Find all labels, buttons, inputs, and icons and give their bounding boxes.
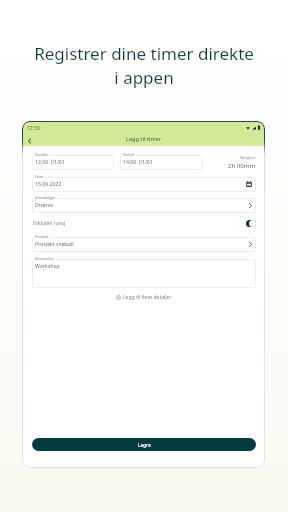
staticText: 14:00 01/01 bbox=[123, 158, 153, 165]
other: Open bbox=[249, 242, 252, 247]
button[interactable]: Prosjekt bbox=[32, 234, 256, 252]
button[interactable]: Sluttid bbox=[120, 152, 203, 170]
staticText: Sluttid bbox=[123, 152, 134, 157]
staticText: Arbeidstype bbox=[35, 195, 56, 200]
staticText: Prosjekt snøball bbox=[35, 240, 74, 247]
staticText: Legg til timer bbox=[126, 135, 162, 142]
button[interactable]: Starttid bbox=[32, 152, 114, 170]
other: Pick date bbox=[246, 181, 252, 187]
button[interactable]: Beskrivelse bbox=[32, 256, 256, 288]
staticText: Inkluder lunsj bbox=[33, 220, 246, 227]
button[interactable]: Inkluder lunsj toggle bbox=[246, 220, 256, 227]
staticText: Varighet bbox=[240, 155, 256, 160]
staticText: Beskrivelse bbox=[35, 256, 54, 261]
staticText: Starttid bbox=[35, 152, 48, 157]
staticText: 15.09.2022 bbox=[35, 180, 62, 187]
staticText: Dato bbox=[35, 174, 44, 179]
staticText: Prosjekt bbox=[35, 234, 49, 239]
staticText: 2h 00mm bbox=[228, 161, 256, 169]
button[interactable]: Legg til flere detaljer bbox=[32, 293, 256, 302]
staticText: 12:00 01/01 bbox=[35, 158, 65, 165]
other: Open bbox=[249, 203, 252, 208]
staticText: 12:30 bbox=[27, 125, 40, 131]
staticText: Registrer dine timer direkte i appen bbox=[0, 42, 288, 89]
staticText: Diverse bbox=[35, 201, 54, 208]
staticText: Workshop bbox=[35, 262, 60, 269]
button[interactable]: Dato bbox=[32, 174, 256, 192]
button[interactable]: Lagre bbox=[32, 438, 256, 451]
button[interactable]: Back bbox=[22, 133, 37, 148]
staticText: Lagre bbox=[138, 442, 151, 448]
button[interactable]: Arbeidstype bbox=[32, 195, 256, 213]
button[interactable]: Inkluder lunsj bbox=[32, 217, 256, 229]
staticText: Legg til flere detaljer bbox=[123, 294, 172, 301]
